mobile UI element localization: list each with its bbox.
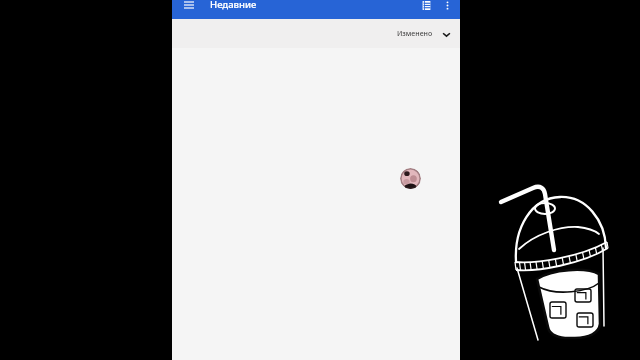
staticText: Изменено	[397, 29, 433, 39]
button[interactable]: More options	[435, 0, 459, 17]
button[interactable]: Navigation menu	[177, 0, 201, 17]
button[interactable]: Photo thumbnail	[400, 168, 421, 189]
button[interactable]: Switch to grid view	[414, 0, 438, 17]
staticText: Недавние	[210, 0, 257, 11]
button[interactable]: Изменено	[397, 29, 451, 39]
